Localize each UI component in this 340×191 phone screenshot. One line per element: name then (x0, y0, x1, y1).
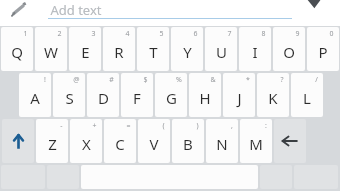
staticText: J (237, 88, 242, 108)
staticText: 3 (91, 29, 96, 39)
staticText: Q (11, 42, 23, 62)
button[interactable]: 0 (307, 27, 339, 71)
staticText: Y (183, 42, 192, 62)
staticText: @ (73, 75, 80, 85)
staticText: = (126, 121, 131, 131)
button[interactable]: 8 (239, 27, 271, 71)
staticText: 1 (23, 29, 28, 39)
staticText: % (176, 75, 182, 85)
button[interactable]: - (36, 119, 68, 163)
button[interactable]: ! (19, 73, 51, 117)
button[interactable]: 1 (1, 27, 33, 71)
button[interactable]: 3 (69, 27, 101, 71)
button[interactable]: + (70, 119, 102, 163)
staticText: 9 (295, 29, 300, 39)
button[interactable]: 9 (273, 27, 305, 71)
staticText: A (30, 88, 40, 108)
button[interactable]: ( (138, 119, 170, 163)
staticText: ? (280, 75, 284, 85)
button[interactable]: Shift (2, 119, 34, 163)
staticText: Z (48, 134, 57, 154)
staticText: 4 (125, 29, 130, 39)
staticText: ! (44, 75, 46, 85)
button[interactable]: ? (257, 73, 289, 117)
staticText: I (252, 42, 258, 62)
staticText: # (109, 75, 114, 85)
staticText: X (82, 134, 91, 154)
staticText: $ (143, 75, 148, 85)
staticText: 2 (57, 29, 62, 39)
staticText: E (81, 42, 90, 62)
button[interactable]: : (240, 119, 272, 163)
staticText: W (44, 42, 58, 62)
staticText: , (231, 121, 233, 131)
staticText: D (98, 88, 109, 108)
staticText: + (92, 121, 97, 131)
staticText: Add text (50, 1, 102, 19)
staticText: * (246, 75, 250, 85)
staticText: K (268, 88, 278, 108)
staticText: ( (162, 121, 165, 131)
staticText: : (265, 121, 267, 131)
staticText: P (318, 42, 328, 62)
staticText: ) (196, 121, 199, 131)
button[interactable]: & (189, 73, 221, 117)
button[interactable]: @ (53, 73, 85, 117)
staticText: V (149, 134, 159, 154)
staticText: 0 (329, 29, 334, 39)
staticText: B (183, 134, 193, 154)
staticText: & (210, 75, 216, 85)
button[interactable]: Send (302, 0, 326, 14)
button[interactable]: 7 (205, 27, 237, 71)
button[interactable]: * (223, 73, 255, 117)
button[interactable]: / (291, 73, 323, 117)
staticText: C (115, 134, 125, 154)
button[interactable]: # (87, 73, 119, 117)
staticText: H (199, 88, 211, 108)
staticText: M (249, 134, 263, 154)
staticText: S (65, 88, 74, 108)
button[interactable]: 5 (137, 27, 169, 71)
staticText: 8 (261, 29, 266, 39)
staticText: 6 (193, 29, 198, 39)
button[interactable]: , (206, 119, 238, 163)
staticText: / (315, 75, 318, 85)
button[interactable]: ) (172, 119, 204, 163)
staticText: N (216, 134, 228, 154)
button[interactable]: % (155, 73, 187, 117)
button[interactable]: Edit (8, 1, 30, 21)
button[interactable]: Backspace (274, 119, 306, 163)
staticText: R (114, 42, 124, 62)
button[interactable]: 4 (103, 27, 135, 71)
staticText: G (166, 88, 177, 108)
staticText: 7 (227, 29, 232, 39)
staticText: L (303, 88, 311, 108)
staticText: T (149, 42, 158, 62)
button[interactable]: = (104, 119, 136, 163)
staticText: O (283, 42, 295, 62)
staticText: U (216, 42, 227, 62)
button[interactable]: Add text (48, 0, 292, 22)
button[interactable]: $ (121, 73, 153, 117)
staticText: F (133, 88, 141, 108)
staticText: 5 (159, 29, 164, 39)
staticText: - (60, 121, 63, 131)
button[interactable]: 2 (35, 27, 67, 71)
button[interactable]: 6 (171, 27, 203, 71)
